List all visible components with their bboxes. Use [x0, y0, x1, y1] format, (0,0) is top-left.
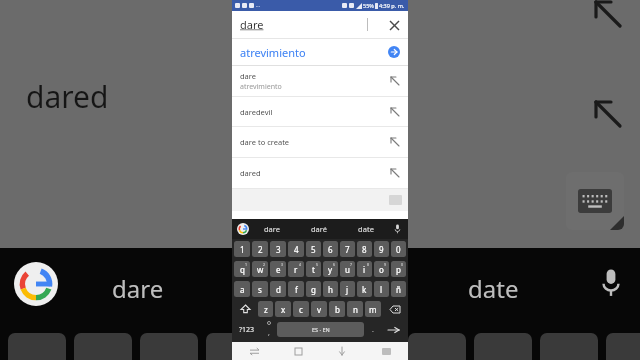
button[interactable]: 9 — [374, 241, 389, 257]
staticText: 9 — [384, 262, 387, 267]
button[interactable]: dare — [249, 219, 295, 239]
staticText: o — [379, 264, 384, 275]
button[interactable]: Enter — [380, 319, 407, 340]
button[interactable]: Recents — [276, 342, 320, 360]
button[interactable]: a — [234, 281, 250, 297]
button[interactable]: Insert daredevil — [386, 103, 404, 121]
button[interactable]: dare to create — [232, 127, 408, 157]
button[interactable]: g — [306, 281, 321, 297]
button[interactable]: dare — [232, 11, 408, 38]
staticText: 2 — [263, 262, 266, 267]
button[interactable]: 1 — [234, 241, 250, 257]
button[interactable]: Comma — [261, 319, 276, 340]
button[interactable]: 3 — [270, 241, 286, 257]
button[interactable]: s — [252, 281, 268, 297]
button[interactable]: l — [374, 281, 389, 297]
button[interactable]: d — [270, 281, 286, 297]
button[interactable]: dare — [232, 66, 408, 96]
staticText: 7 — [350, 262, 353, 267]
staticText: atrevimiento — [240, 45, 306, 60]
button[interactable]: Insert dare — [386, 72, 404, 90]
staticText: 4 — [299, 262, 302, 267]
button[interactable]: p — [391, 261, 406, 277]
button[interactable]: w — [252, 261, 268, 277]
button[interactable]: m — [365, 301, 381, 317]
staticText: ES · EN — [312, 326, 330, 333]
button[interactable]: 5 — [306, 241, 321, 257]
button[interactable]: Switch input — [232, 342, 276, 360]
button[interactable]: 4 — [288, 241, 304, 257]
staticText: h — [328, 284, 333, 295]
button[interactable]: Insert dared — [386, 164, 404, 182]
staticText: t — [312, 264, 315, 275]
button[interactable]: b — [329, 301, 345, 317]
staticText: 5 — [316, 262, 319, 267]
button[interactable]: Google — [237, 223, 249, 235]
staticText: 3 — [281, 262, 284, 267]
staticText: date — [468, 272, 519, 305]
button[interactable]: f — [288, 281, 304, 297]
staticText: , — [268, 328, 270, 338]
button[interactable]: c — [293, 301, 309, 317]
staticText: 0 — [401, 262, 404, 267]
button[interactable]: ES · EN — [277, 322, 364, 337]
button[interactable]: r — [288, 261, 304, 277]
button[interactable]: daredevil — [232, 97, 408, 126]
staticText: i — [363, 264, 366, 275]
staticText: e — [276, 264, 281, 275]
button[interactable]: Search — [384, 42, 404, 62]
staticText: 3 — [276, 244, 281, 255]
staticText: 5 — [311, 244, 316, 255]
button[interactable]: Clear — [384, 15, 404, 35]
button[interactable]: atrevimiento — [232, 39, 408, 65]
staticText: 1 — [240, 244, 245, 255]
button[interactable]: daré — [295, 219, 342, 239]
staticText: 7 — [345, 244, 350, 255]
staticText: y — [328, 264, 333, 275]
button[interactable]: x — [275, 301, 291, 317]
button[interactable]: u — [340, 261, 355, 277]
button[interactable]: ?123 — [233, 319, 261, 340]
staticText: daré — [311, 224, 327, 234]
button[interactable]: n — [347, 301, 363, 317]
button[interactable]: h — [323, 281, 338, 297]
button[interactable]: Backspace — [383, 301, 406, 317]
staticText: 8 — [362, 244, 367, 255]
button[interactable]: Shift — [234, 301, 256, 317]
staticText: 1 — [245, 262, 248, 267]
button[interactable]: Voice input — [389, 221, 405, 237]
staticText: daredevil — [240, 107, 273, 117]
button[interactable]: i — [357, 261, 372, 277]
staticText: n — [353, 304, 358, 315]
button[interactable]: 7 — [340, 241, 355, 257]
button[interactable]: 2 — [252, 241, 268, 257]
staticText: dare — [240, 17, 264, 32]
button[interactable]: 6 — [323, 241, 338, 257]
button[interactable]: v — [311, 301, 327, 317]
button[interactable]: Keyboard settings — [364, 342, 408, 360]
staticText: 8 — [367, 262, 370, 267]
button[interactable]: y — [323, 261, 338, 277]
staticText: . — [372, 325, 374, 335]
button[interactable]: z — [258, 301, 273, 317]
button[interactable]: 0 — [391, 241, 406, 257]
button[interactable]: Show keyboard — [566, 172, 624, 230]
button[interactable]: ñ — [391, 281, 406, 297]
button[interactable]: o — [374, 261, 389, 277]
button[interactable]: dared — [232, 158, 408, 188]
button[interactable]: t — [306, 261, 321, 277]
staticText: dare — [264, 224, 280, 234]
staticText: c — [299, 304, 303, 315]
button[interactable]: j — [340, 281, 355, 297]
button[interactable]: e — [270, 261, 286, 277]
button[interactable]: q — [234, 261, 250, 277]
button[interactable]: date — [342, 219, 389, 239]
staticText: 0 — [396, 244, 401, 255]
button[interactable]: Hide keyboard — [320, 342, 364, 360]
button[interactable]: Insert dare to create — [386, 133, 404, 151]
button[interactable]: k — [357, 281, 372, 297]
staticText: 6 — [328, 244, 333, 255]
button[interactable]: 8 — [357, 241, 372, 257]
button[interactable]: Period — [365, 319, 380, 340]
